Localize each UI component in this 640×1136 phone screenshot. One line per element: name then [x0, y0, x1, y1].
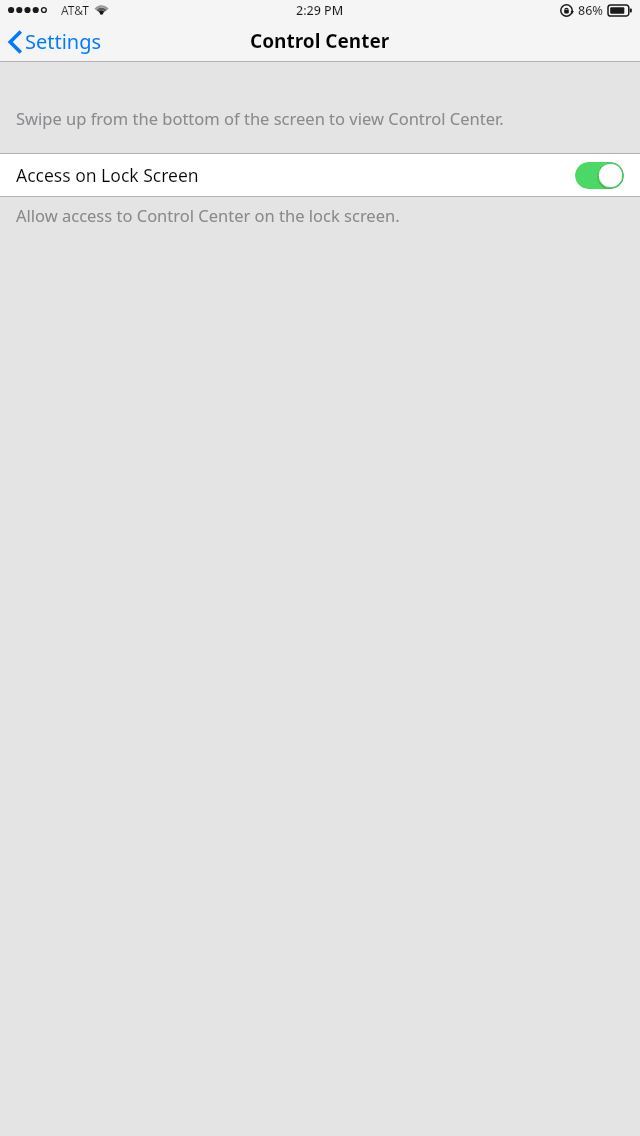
- button[interactable]: Access on Lock Screen: [0, 154, 640, 196]
- button[interactable]: Settings: [0, 24, 112, 59]
- staticText: Swipe up from the bottom of the screen t…: [16, 107, 618, 129]
- staticText: Allow access to Control Center on the lo…: [16, 204, 618, 226]
- staticText: Settings: [25, 28, 102, 55]
- staticText: 2:29 PM: [296, 2, 344, 19]
- staticText: Access on Lock Screen: [16, 163, 199, 187]
- staticText: AT&T: [61, 2, 89, 18]
- staticText: Control Center: [250, 28, 390, 54]
- button[interactable]: Access on Lock Screen toggle, on: [575, 162, 624, 189]
- staticText: 86%: [578, 2, 603, 19]
